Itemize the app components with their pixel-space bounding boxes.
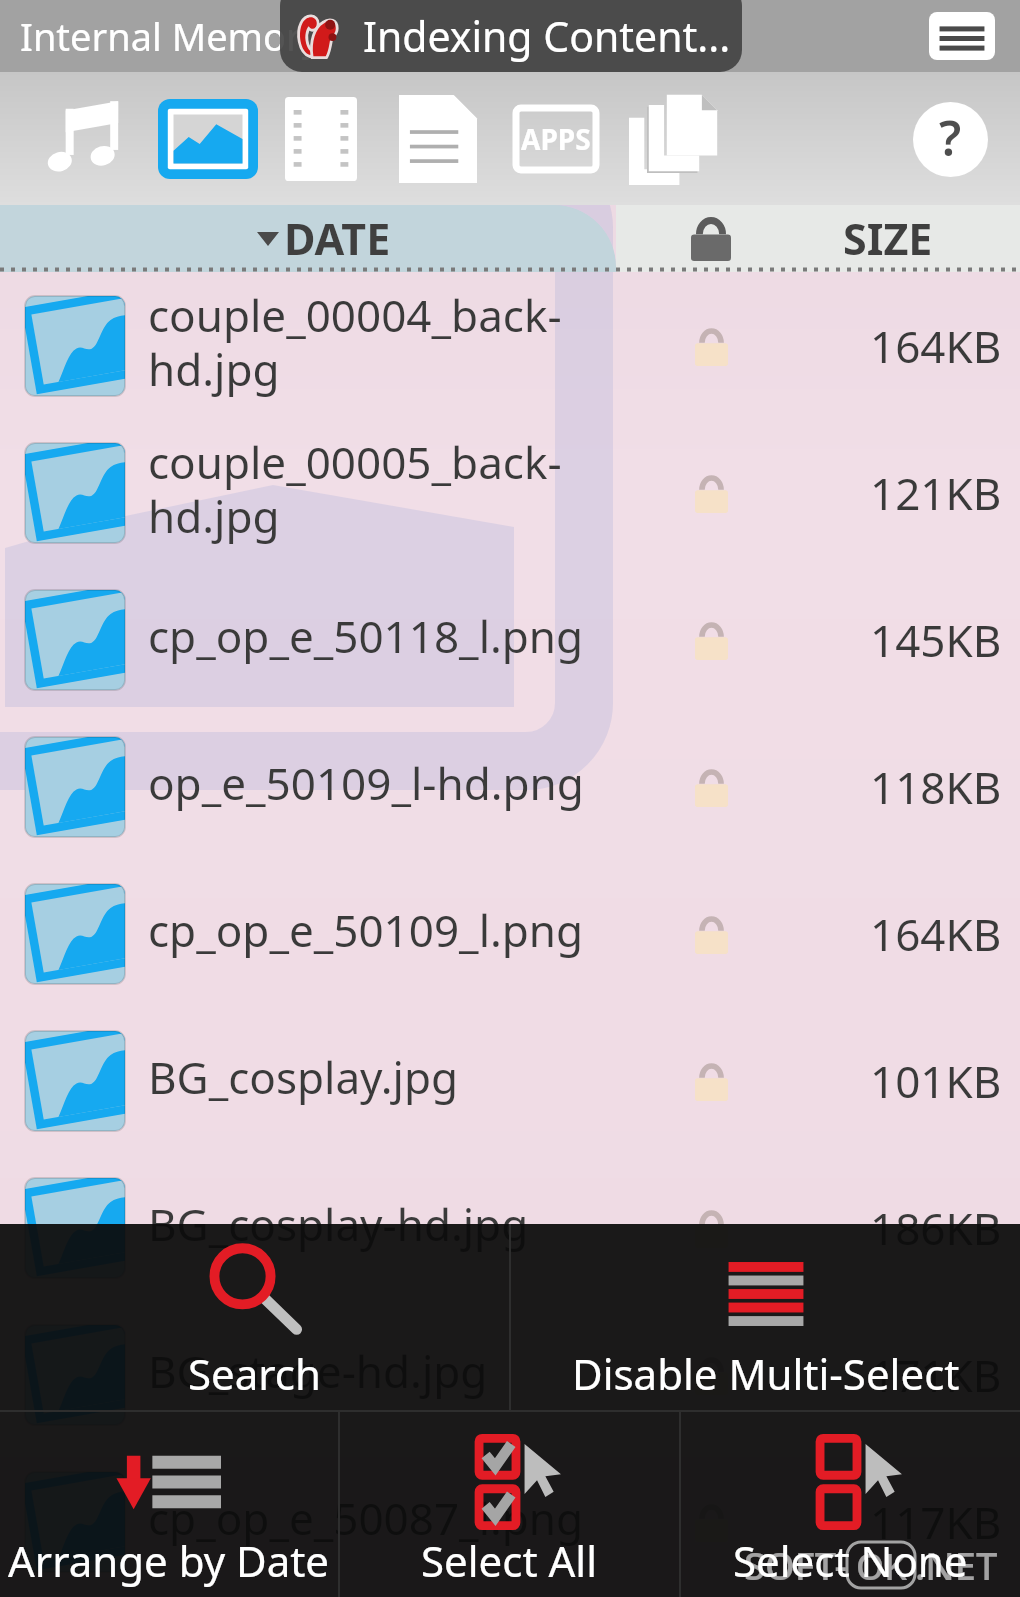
staticText: 171KB (870, 1345, 1002, 1405)
button[interactable]: Disable Multi-Select (511, 1224, 1020, 1410)
staticText: 117KB (870, 1492, 1002, 1552)
button[interactable]: Pictures (151, 72, 265, 205)
staticText: 121KB (870, 463, 1002, 523)
staticText: 186KB (870, 1198, 1002, 1258)
staticText: Disable Multi-Select (572, 1345, 960, 1402)
staticText: DATE (284, 209, 391, 268)
staticText: Arrange by Date (8, 1532, 330, 1589)
staticText: Select None (733, 1532, 968, 1589)
button[interactable]: couple_00004_back-hd.jpg (0, 272, 1020, 419)
staticText: SIZE (843, 209, 933, 268)
staticText: OK (856, 1542, 907, 1588)
staticText: 164KB (870, 316, 1002, 376)
button[interactable]: cp_op_e_50118_l.png (0, 566, 1020, 713)
button[interactable]: op_e_50109_l-hd.png (0, 713, 1020, 860)
staticText: Search (188, 1345, 321, 1402)
button[interactable]: cp_op_e_50109_l.png (0, 860, 1020, 1007)
staticText: APPS (521, 120, 591, 158)
button[interactable]: DATE (0, 205, 616, 272)
staticText: ? (939, 105, 962, 170)
staticText: cp_op_e_50087_l.png (148, 1488, 584, 1548)
button[interactable]: Documents (381, 72, 495, 205)
button[interactable]: Videos (264, 72, 378, 205)
button[interactable]: Other files (617, 72, 731, 205)
button[interactable]: Arrange by Date (0, 1412, 338, 1597)
staticText: op_e_50109_l-hd.png (148, 753, 584, 813)
button[interactable]: Menu (926, 10, 998, 62)
staticText: BG_stage-hd.jpg (148, 1341, 488, 1401)
staticText: couple_00004_back-hd.jpg (148, 285, 648, 399)
staticText: couple_00005_back-hd.jpg (148, 432, 648, 546)
staticText: BG_cosplay.jpg (148, 1047, 459, 1107)
button[interactable]: Select All (340, 1412, 679, 1597)
staticText: 118KB (870, 757, 1002, 817)
staticText: .NET (915, 1539, 998, 1591)
button[interactable]: Select None (681, 1412, 1020, 1597)
staticText: cp_op_e_50109_l.png (148, 900, 584, 960)
button[interactable]: BG_cosplay-hd.jpg (0, 1154, 1020, 1301)
staticText: BG_cosplay-hd.jpg (148, 1194, 529, 1254)
staticText: Internal Memory (20, 10, 322, 62)
button[interactable]: Apps (499, 72, 613, 205)
button[interactable]: BG_cosplay.jpg (0, 1007, 1020, 1154)
button[interactable]: Search (0, 1224, 509, 1410)
staticText: Indexing Content... (363, 8, 731, 64)
staticText: 101KB (870, 1051, 1002, 1111)
button[interactable]: BG_stage-hd.jpg (0, 1301, 1020, 1448)
button[interactable]: cp_op_e_50087_l.png (0, 1448, 1020, 1595)
staticText: Select All (421, 1532, 598, 1589)
button[interactable]: Music (28, 72, 142, 205)
staticText: SOFT- (744, 1539, 847, 1591)
button[interactable]: Help (910, 99, 990, 179)
staticText: 145KB (870, 610, 1002, 670)
button[interactable]: couple_00005_back-hd.jpg (0, 419, 1020, 566)
staticText: 164KB (870, 904, 1002, 964)
staticText: cp_op_e_50118_l.png (148, 606, 584, 666)
